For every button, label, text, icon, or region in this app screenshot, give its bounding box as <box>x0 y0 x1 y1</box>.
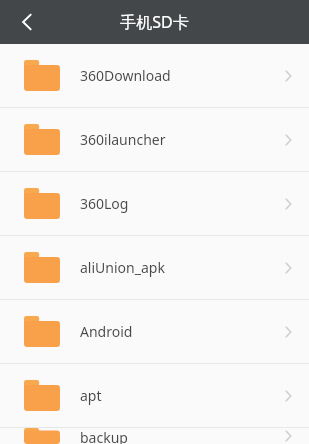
button[interactable]: 360Log <box>0 172 309 235</box>
button[interactable]: apt <box>0 364 309 427</box>
button[interactable]: aliUnion_apk <box>0 236 309 299</box>
button[interactable]: Back <box>0 0 54 44</box>
staticText: 360ilauncher <box>80 130 273 149</box>
button[interactable]: backup <box>0 428 309 444</box>
staticText: 手机SD卡 <box>120 11 189 33</box>
staticText: apt <box>80 386 273 405</box>
staticText: 360Download <box>80 66 273 85</box>
staticText: backup <box>80 428 273 444</box>
staticText: Android <box>80 322 273 341</box>
staticText: aliUnion_apk <box>80 258 273 277</box>
button[interactable]: Android <box>0 300 309 363</box>
button[interactable]: 360Download <box>0 44 309 107</box>
button[interactable]: 360ilauncher <box>0 108 309 171</box>
staticText: 360Log <box>80 194 273 213</box>
